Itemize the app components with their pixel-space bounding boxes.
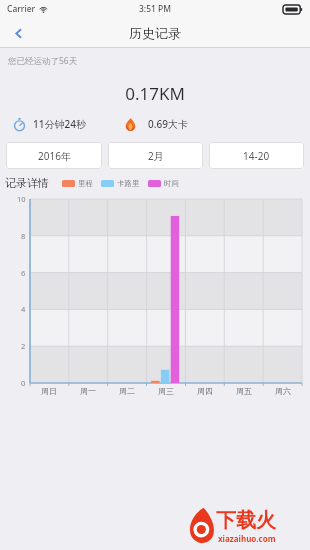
staticText: 周三 [158, 386, 174, 396]
button[interactable]: 2016年 [6, 142, 102, 169]
staticText: 里程 [78, 179, 93, 188]
staticText: 6 [21, 268, 26, 278]
staticText: Carrier [7, 3, 36, 15]
staticText: 时间 [164, 179, 179, 188]
staticText: 0.69大卡 [148, 117, 188, 131]
staticText: 历史记录 [129, 25, 181, 41]
staticText: 周五 [236, 386, 252, 396]
staticText: 4 [21, 304, 26, 314]
button[interactable]: 14-20 [209, 142, 304, 169]
button[interactable]: Back [0, 18, 36, 48]
staticText: 周二 [119, 386, 135, 396]
staticText: 记录详情 [5, 176, 49, 190]
staticText: xiazaihuo.com [218, 533, 276, 544]
staticText: 下载火 [216, 508, 276, 533]
button[interactable]: 2月 [108, 142, 203, 169]
staticText: 10 [17, 194, 26, 204]
staticText: 0.17KM [0, 82, 310, 105]
staticText: 2 [21, 341, 26, 351]
staticText: 0 [21, 378, 26, 388]
staticText: 周六 [275, 386, 291, 396]
staticText: 卡路里 [117, 179, 140, 188]
staticText: 您已经运动了56天 [8, 55, 78, 67]
staticText: 14-20 [243, 149, 270, 163]
staticText: 11分钟24秒 [33, 117, 86, 131]
staticText: 3:51 PM [139, 3, 172, 15]
staticText: 8 [21, 231, 26, 241]
staticText: 周一 [80, 386, 96, 396]
staticText: 周四 [197, 386, 213, 396]
staticText: 周日 [41, 386, 57, 396]
staticText: 2月 [148, 149, 164, 163]
staticText: 2016年 [38, 149, 71, 163]
